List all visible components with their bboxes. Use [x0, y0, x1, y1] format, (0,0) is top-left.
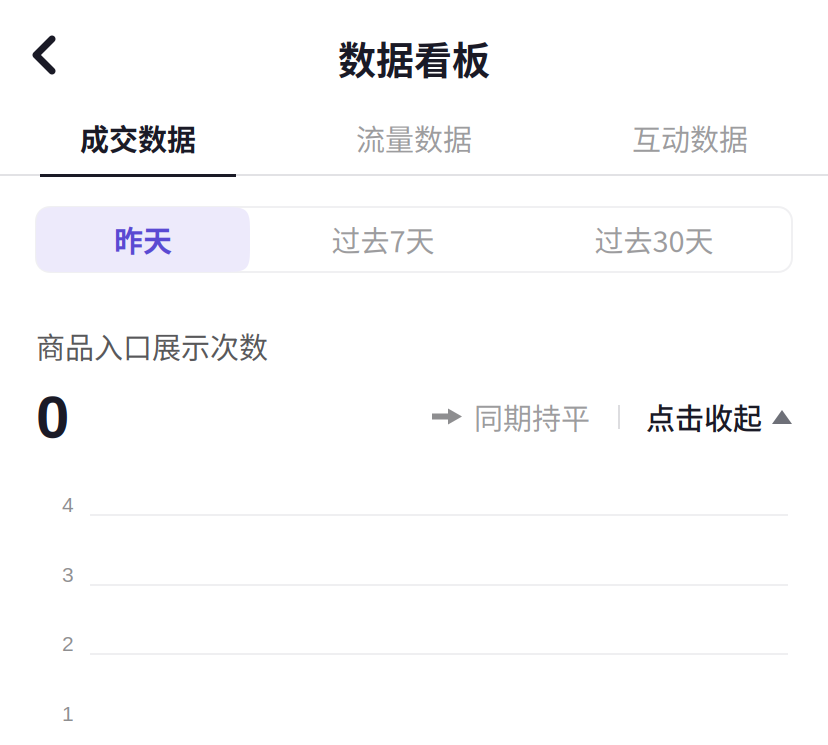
button[interactable]: 昨天	[36, 207, 250, 272]
staticText: 3	[62, 563, 74, 586]
staticText: 1	[62, 702, 74, 725]
staticText: 2	[62, 632, 74, 655]
staticText: 0	[36, 383, 69, 450]
staticText: 过去7天	[331, 218, 434, 260]
staticText: 点击收起	[646, 396, 762, 438]
staticText: 成交数据	[80, 117, 196, 159]
button[interactable]: 过去7天	[250, 207, 516, 272]
staticText: 商品入口展示次数	[36, 325, 268, 367]
button[interactable]: 成交数据	[0, 117, 276, 177]
staticText: 数据看板	[338, 30, 490, 85]
button[interactable]: 点击收起	[646, 396, 792, 438]
button[interactable]: 互动数据	[552, 117, 828, 177]
staticText: 昨天	[114, 218, 172, 260]
staticText: 互动数据	[632, 117, 748, 159]
staticText: 过去30天	[594, 218, 713, 260]
button[interactable]: 流量数据	[276, 117, 552, 177]
button[interactable]: 过去30天	[516, 207, 792, 272]
button[interactable]: Back	[12, 24, 76, 86]
staticText: 同期持平	[474, 396, 590, 438]
staticText: 4	[62, 493, 74, 516]
staticText: 流量数据	[356, 117, 472, 159]
